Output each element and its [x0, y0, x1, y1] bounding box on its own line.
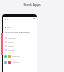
button[interactable]: YouTube: [3, 59, 37, 65]
staticText: Stock Apps: [0, 3, 64, 7]
button[interactable]: Camera: [3, 44, 37, 48]
staticText: Weather: [8, 49, 15, 51]
button[interactable]: Snapchat: [3, 53, 37, 59]
button[interactable]: Weather: [3, 48, 37, 52]
staticText: 9:41: [5, 18, 9, 20]
button[interactable]: Messages: [3, 36, 37, 40]
staticText: YouTube: [12, 61, 20, 63]
staticText: Messages: [8, 37, 16, 39]
staticText: App Morning Suggestion: [5, 31, 30, 34]
button[interactable]: Photos: [3, 40, 37, 44]
staticText: Photos: [8, 41, 14, 43]
button[interactable]: Today: [5, 26, 12, 28]
staticText: Camera: [8, 45, 15, 47]
staticText: Snapchat: [12, 55, 20, 57]
staticText: Today: [7, 26, 12, 28]
